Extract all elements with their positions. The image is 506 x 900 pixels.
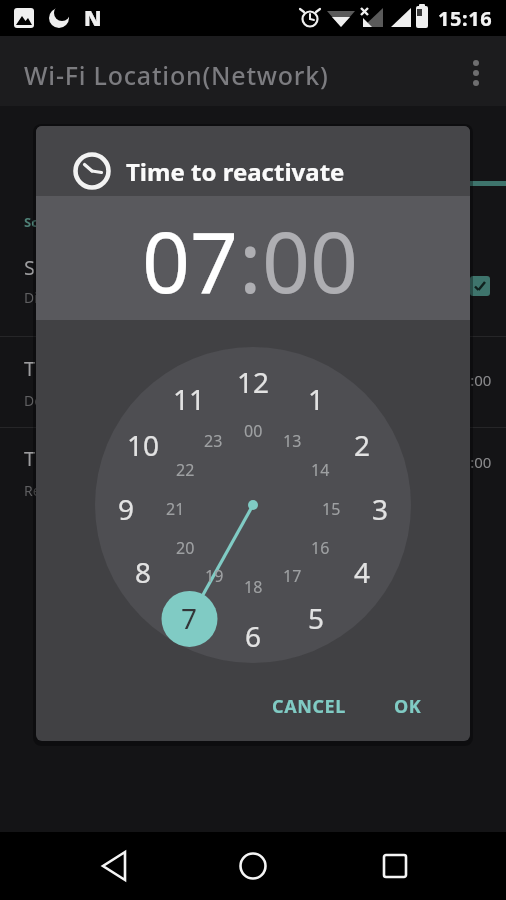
staticText: 16	[311, 537, 330, 559]
staticText: 00	[262, 203, 359, 317]
staticText: OK	[394, 694, 422, 719]
button[interactable]	[470, 276, 490, 296]
button[interactable]	[89, 840, 139, 890]
staticText: N	[84, 4, 102, 33]
button[interactable]	[370, 840, 420, 890]
button[interactable]	[228, 840, 278, 890]
staticText: 9	[118, 490, 135, 528]
staticText: 12	[237, 363, 270, 401]
staticText: 21	[166, 498, 185, 520]
staticText: 23	[204, 430, 223, 452]
staticText: Time to reactivate	[126, 155, 345, 188]
staticText: 5	[308, 599, 325, 637]
button[interactable]: OK	[378, 682, 438, 730]
staticText: 11	[173, 380, 206, 418]
staticText: 13	[283, 430, 302, 452]
staticText: 1	[308, 380, 325, 418]
staticText: 07:00	[453, 452, 492, 472]
staticText: Wi-Fi Location(Network)	[24, 58, 329, 92]
staticText: Schedule enabled	[24, 254, 191, 281]
staticText: 20	[176, 537, 195, 559]
staticText: CANCEL	[272, 694, 346, 719]
staticText: 07	[142, 203, 239, 317]
staticText: 10	[127, 426, 160, 464]
staticText: 15:16	[438, 5, 493, 32]
staticText: 2	[354, 426, 371, 464]
staticText: Deactivate Wi-Fi at set time	[24, 391, 203, 410]
staticText: Time to deactivate	[24, 355, 197, 382]
staticText: Time to reactivate	[24, 445, 193, 472]
staticText: 19	[205, 565, 224, 587]
staticText: 6	[245, 617, 262, 655]
button[interactable]: CANCEL	[253, 682, 365, 730]
staticText: :	[239, 203, 262, 317]
staticText: 4	[354, 553, 371, 591]
staticText: 8	[135, 553, 152, 591]
staticText: 14	[311, 459, 330, 481]
staticText: 00	[244, 420, 263, 442]
staticText: 23:00	[453, 370, 492, 390]
staticText: 7	[181, 599, 198, 637]
staticText: 17	[283, 565, 302, 587]
staticText: Schedule	[24, 213, 83, 231]
staticText: 22	[176, 459, 195, 481]
staticText: 18	[244, 576, 263, 598]
staticText: 15	[322, 498, 341, 520]
staticText: Reactivate Wi-Fi at set time	[24, 481, 201, 500]
staticText: 3	[372, 490, 389, 528]
staticText: Disable scheduled times	[24, 288, 184, 307]
